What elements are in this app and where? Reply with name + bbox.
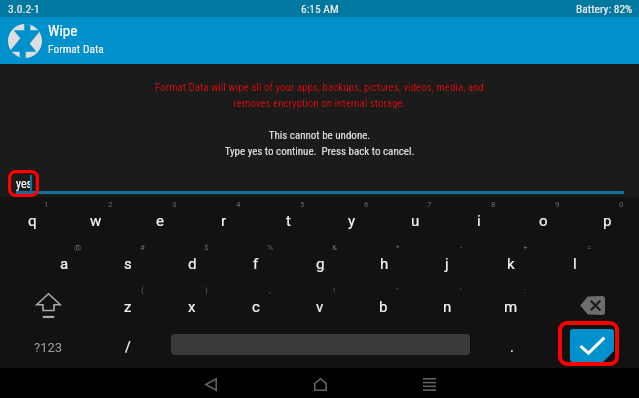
staticText: yes — [16, 177, 33, 191]
button[interactable]: g — [288, 240, 352, 283]
button[interactable]: f — [224, 240, 288, 283]
button[interactable]: w — [64, 197, 128, 240]
staticText: q — [28, 212, 37, 230]
button[interactable]: Back — [171, 368, 251, 398]
button[interactable]: n — [415, 283, 479, 326]
button[interactable]: / — [96, 326, 160, 368]
staticText: 2 — [108, 200, 113, 209]
staticText: f — [253, 255, 259, 273]
button[interactable]: ?123 — [0, 326, 96, 368]
button[interactable]: m — [479, 283, 543, 326]
button[interactable]: j — [415, 240, 479, 283]
staticText: ( — [141, 286, 144, 295]
staticText: ' — [460, 286, 462, 295]
staticText: ! — [333, 286, 336, 295]
staticText: 0 — [619, 200, 624, 209]
staticText: 4 — [236, 200, 241, 209]
staticText: b — [379, 298, 388, 316]
staticText: # — [140, 243, 145, 252]
button[interactable]: t — [256, 197, 320, 240]
staticText: s — [124, 255, 132, 273]
staticText: + — [523, 243, 528, 252]
staticText: / — [125, 339, 131, 355]
button[interactable]: v — [288, 283, 352, 326]
staticText: % — [267, 243, 273, 252]
button[interactable]: d — [160, 240, 224, 283]
button[interactable]: Backspace — [543, 283, 639, 326]
staticText: 6 — [364, 200, 369, 209]
staticText: @ — [74, 243, 82, 252]
staticText: Format Data will wipe all of your apps, … — [0, 81, 639, 94]
staticText: = — [587, 243, 592, 252]
staticText: " — [396, 286, 399, 295]
staticText: 6:15 AM — [301, 2, 339, 15]
button[interactable]: l — [543, 240, 607, 283]
staticText: a — [60, 255, 69, 273]
staticText: r — [221, 212, 227, 230]
button[interactable]: y — [320, 197, 384, 240]
staticText: . — [510, 339, 514, 355]
staticText: & — [332, 243, 337, 252]
staticText: z — [124, 298, 132, 316]
staticText: 7 — [427, 200, 432, 209]
button[interactable]: x — [160, 283, 224, 326]
staticText: $ — [204, 243, 209, 252]
button[interactable]: Enter — [570, 329, 614, 362]
staticText: 9 — [555, 200, 560, 209]
staticText: v — [316, 298, 324, 316]
staticText: o — [539, 212, 548, 230]
staticText: removes encryption on internal storage. — [0, 97, 639, 110]
staticText: 5 — [300, 200, 305, 209]
staticText: h — [380, 255, 389, 273]
staticText: * — [396, 243, 400, 252]
button[interactable]: Home — [280, 368, 360, 398]
button[interactable]: u — [383, 197, 447, 240]
staticText: 1 — [44, 200, 49, 209]
staticText: x — [188, 298, 196, 316]
staticText: g — [316, 255, 325, 273]
button[interactable]: e — [128, 197, 192, 240]
button[interactable]: s — [96, 240, 160, 283]
staticText: 3.0.2-1 — [8, 2, 40, 15]
staticText: , — [269, 286, 271, 295]
staticText: ) — [205, 286, 208, 295]
button[interactable]: q — [0, 197, 64, 240]
staticText: c — [252, 298, 260, 316]
staticText: Type yes to continue. Press back to canc… — [0, 145, 639, 158]
staticText: ?123 — [34, 340, 63, 355]
staticText: k — [507, 255, 515, 273]
staticText: t — [286, 212, 291, 230]
staticText: n — [443, 298, 452, 316]
staticText: 8 — [491, 200, 496, 209]
button[interactable]: p — [575, 197, 639, 240]
staticText: l — [573, 255, 577, 273]
staticText: p — [603, 212, 612, 230]
button[interactable]: Recents — [389, 368, 469, 398]
staticText: m — [504, 298, 518, 316]
button[interactable]: c — [224, 283, 288, 326]
button[interactable]: z — [96, 283, 160, 326]
staticText: u — [411, 212, 420, 230]
staticText: This cannot be undone. — [0, 129, 639, 142]
button[interactable]: o — [511, 197, 575, 240]
staticText: e — [156, 212, 164, 230]
staticText: Format Data — [48, 42, 104, 55]
staticText: : — [524, 286, 526, 295]
staticText: Battery: 82% — [576, 2, 633, 15]
staticText: i — [477, 212, 481, 230]
button[interactable]: a — [32, 240, 96, 283]
button[interactable]: i — [447, 197, 511, 240]
button[interactable]: b — [351, 283, 415, 326]
staticText: d — [188, 255, 197, 273]
staticText: 3 — [172, 200, 177, 209]
staticText: Wipe — [48, 22, 78, 40]
button[interactable]: h — [352, 240, 416, 283]
staticText: - — [460, 243, 463, 252]
button[interactable]: k — [479, 240, 543, 283]
staticText: y — [348, 212, 356, 230]
button[interactable]: Shift — [0, 283, 96, 326]
button[interactable]: . — [480, 326, 544, 368]
button[interactable]: r — [192, 197, 256, 240]
staticText: j — [445, 255, 449, 273]
